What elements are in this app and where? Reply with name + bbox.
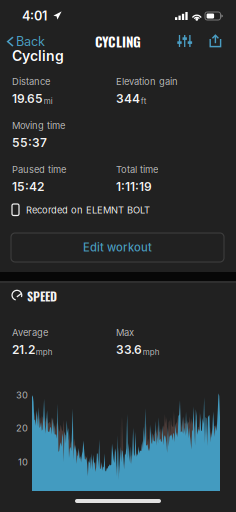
staticText: 344 <box>116 91 140 106</box>
staticText: ft <box>141 96 147 106</box>
staticText: 30 <box>16 389 28 401</box>
staticText: Edit workout <box>83 241 152 254</box>
staticText: 10 <box>18 456 28 468</box>
staticText: Max <box>116 327 134 338</box>
staticText: SPEED <box>27 287 57 305</box>
staticText: Cycling <box>12 47 64 64</box>
staticText: 1:11:19 <box>116 179 152 194</box>
staticText: mi <box>44 96 53 106</box>
staticText: Elevation gain <box>116 76 178 87</box>
staticText: 19.65 <box>12 91 43 106</box>
staticText: 4:01 <box>22 8 47 24</box>
staticText: 55:37 <box>12 135 47 150</box>
staticText: Total time <box>116 164 158 175</box>
staticText: Distance <box>12 76 50 87</box>
staticText: Recorded on ELEMNT BOLT <box>26 204 150 216</box>
staticText: 15:42 <box>12 179 44 194</box>
staticText: mph <box>143 347 160 357</box>
staticText: Average <box>12 327 48 338</box>
button[interactable]: Edit workout <box>11 233 224 262</box>
staticText: Paused time <box>12 164 66 175</box>
staticText: Moving time <box>12 120 65 131</box>
staticText: Back <box>16 34 45 49</box>
staticText: 33.6 <box>116 342 142 357</box>
staticText: 20 <box>16 422 28 434</box>
staticText: CYCLING <box>95 32 141 51</box>
staticText: mph <box>36 347 53 357</box>
staticText: 21.2 <box>12 342 35 357</box>
